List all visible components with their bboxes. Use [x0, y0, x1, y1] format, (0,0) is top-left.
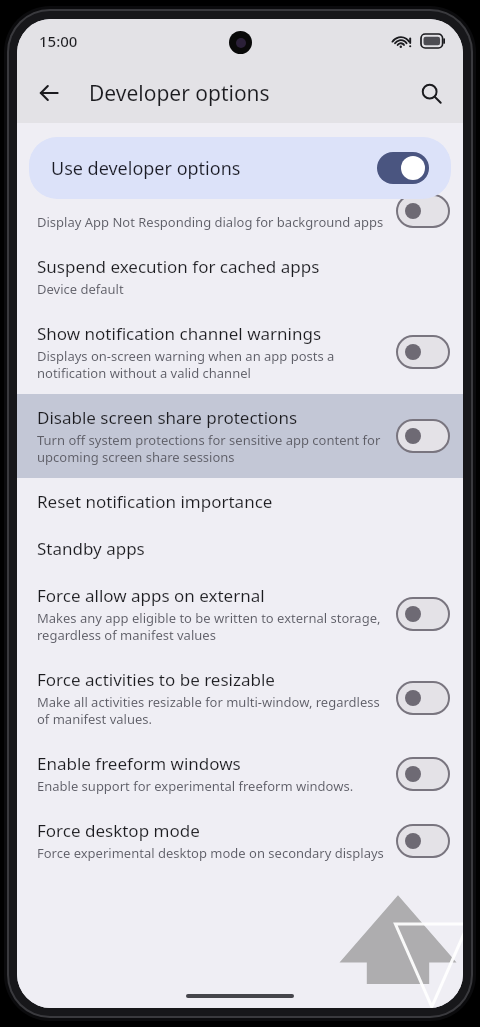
- button[interactable]: Toggle: [397, 420, 449, 452]
- staticText: Force desktop mode: [37, 819, 200, 842]
- staticText: Show notification channel warnings: [37, 322, 322, 345]
- button[interactable]: Toggle: [397, 195, 449, 227]
- staticText: Enable support for experimental freeform…: [37, 777, 354, 795]
- button[interactable]: Reset notification importance: [17, 478, 463, 525]
- staticText: Standby apps: [37, 537, 145, 560]
- button[interactable]: Back: [25, 69, 73, 117]
- staticText: Suspend execution for cached apps: [37, 255, 320, 278]
- button[interactable]: Suspend execution for cached apps: [17, 243, 463, 310]
- button[interactable]: Force allow apps on external: [17, 572, 463, 656]
- staticText: Displays on-screen warning when an app p…: [37, 347, 387, 382]
- staticText: Makes any app eligible to be written to …: [37, 609, 387, 644]
- staticText: Force experimental desktop mode on secon…: [37, 844, 384, 862]
- button[interactable]: Toggle: [397, 825, 449, 857]
- staticText: Reset notification importance: [37, 490, 273, 513]
- staticText: Developer options: [89, 79, 270, 108]
- staticText: Force activities to be resizable: [37, 668, 275, 691]
- staticText: Force allow apps on external: [37, 584, 265, 607]
- button[interactable]: Standby apps: [17, 525, 463, 572]
- button[interactable]: Enable freeform windows: [17, 740, 463, 807]
- staticText: Disable screen share protections: [37, 406, 298, 429]
- button[interactable]: Use developer options toggle: [377, 152, 429, 184]
- staticText: Use developer options: [51, 156, 241, 181]
- staticText: Display App Not Responding dialog for ba…: [37, 213, 384, 231]
- button[interactable]: Toggle: [397, 336, 449, 368]
- button[interactable]: Toggle: [397, 598, 449, 630]
- button[interactable]: Search: [407, 69, 455, 117]
- button[interactable]: Display App Not Responding dialog for ba…: [17, 179, 463, 243]
- staticText: Make all activities resizable for multi-…: [37, 693, 387, 728]
- button[interactable]: Toggle: [397, 682, 449, 714]
- button[interactable]: Toggle: [397, 758, 449, 790]
- button[interactable]: Force desktop mode: [17, 807, 463, 874]
- staticText: Enable freeform windows: [37, 752, 241, 775]
- button[interactable]: Show notification channel warnings: [17, 310, 463, 394]
- button[interactable]: Disable screen share protections: [17, 394, 463, 478]
- button[interactable]: Force activities to be resizable: [17, 656, 463, 740]
- staticText: Turn off system protections for sensitiv…: [37, 431, 387, 466]
- staticText: 15:00: [39, 31, 78, 51]
- button[interactable]: Use developer options: [29, 137, 451, 199]
- staticText: Device default: [37, 280, 124, 298]
